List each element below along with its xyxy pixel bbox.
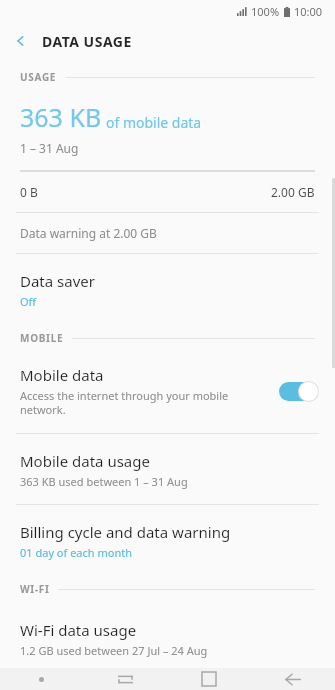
staticText: 0 B xyxy=(20,184,38,200)
staticText: 363 KB xyxy=(20,100,102,134)
staticText: 10:00 xyxy=(294,4,323,19)
button[interactable]: Billing cycle and data warning xyxy=(0,512,335,570)
staticText: 363 KB used between 1 – 31 Aug xyxy=(20,474,188,489)
button[interactable]: Mobile data toggle xyxy=(277,379,319,403)
staticText: Off xyxy=(20,294,37,309)
staticText: Wi-Fi data usage xyxy=(20,620,137,640)
button[interactable]: Back xyxy=(251,668,335,690)
staticText: Mobile data xyxy=(20,365,104,385)
button[interactable]: Data saver xyxy=(0,261,335,319)
staticText: Billing cycle and data warning xyxy=(20,522,231,542)
button[interactable]: Menu xyxy=(0,668,83,690)
button[interactable]: Mobile data usage xyxy=(0,441,335,499)
button[interactable]: Wi-Fi data usage xyxy=(0,610,335,668)
staticText: Mobile data usage xyxy=(20,451,150,471)
staticText: 1.2 GB used between 27 Jul – 24 Aug xyxy=(20,643,208,658)
staticText: 1 – 31 Aug xyxy=(20,140,79,156)
staticText: 01 day of each month xyxy=(20,545,132,560)
staticText: MOBILE xyxy=(20,331,64,345)
staticText: WI-FI xyxy=(20,582,50,596)
staticText: Access the internet through your mobile … xyxy=(20,388,229,417)
staticText: DATA USAGE xyxy=(42,32,132,51)
staticText: 2.00 GB xyxy=(271,184,315,200)
button[interactable]: Recents xyxy=(83,668,167,690)
staticText: USAGE xyxy=(20,70,57,84)
staticText: 100% xyxy=(251,4,280,19)
staticText: Data warning at 2.00 GB xyxy=(20,225,157,241)
button[interactable]: Mobile data xyxy=(0,361,335,425)
button[interactable]: Back xyxy=(0,22,42,60)
staticText: Data saver xyxy=(20,271,95,291)
staticText: of mobile data xyxy=(106,113,202,132)
button[interactable]: Home xyxy=(167,668,251,690)
